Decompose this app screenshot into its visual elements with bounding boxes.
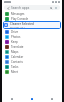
staticText: Drive — [11, 30, 19, 34]
button[interactable]: Calendar — [2, 54, 62, 59]
staticText: Photos — [11, 35, 21, 39]
button[interactable]: Photos — [2, 34, 62, 39]
button[interactable]: Translate — [2, 44, 62, 49]
button[interactable]: Account — [54, 6, 58, 10]
button[interactable]: Drive — [2, 29, 62, 34]
button[interactable]: Play Console — [2, 16, 62, 21]
staticText: Calendar — [11, 55, 24, 59]
button[interactable]: Maps — [2, 49, 62, 54]
button[interactable]: Back — [4, 5, 60, 10]
staticText: 30.4 MB · v2.1 — [10, 26, 25, 29]
staticText: Translate — [11, 45, 24, 49]
button[interactable]: Meet — [2, 69, 62, 74]
button[interactable]: Messages — [2, 11, 62, 16]
staticText: Play Console — [11, 17, 29, 21]
staticText: Meet — [11, 70, 18, 74]
button[interactable]: Games — [2, 96, 22, 102]
button[interactable]: Voice search — [49, 6, 53, 10]
staticText: Tasks — [11, 65, 19, 69]
button[interactable]: Keep — [2, 39, 62, 44]
button[interactable]: Back — [6, 6, 10, 10]
staticText: Search apps — [11, 6, 30, 10]
staticText: Contacts — [11, 60, 23, 64]
staticText: Keep — [11, 40, 18, 44]
staticText: Maps — [11, 50, 19, 54]
button[interactable]: Books — [42, 96, 62, 102]
button[interactable]: Apps — [22, 96, 42, 102]
button[interactable]: Cleaner Selected — [3, 21, 61, 29]
staticText: Messages — [11, 12, 25, 16]
button[interactable]: Contacts — [2, 59, 62, 64]
staticText: Cleaner Selected — [10, 22, 34, 26]
button[interactable]: Tasks — [2, 64, 62, 69]
